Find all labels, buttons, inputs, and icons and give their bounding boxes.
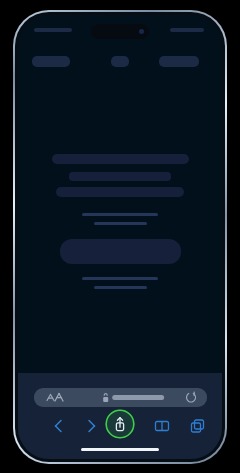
button[interactable]: Account (159, 56, 199, 67)
button[interactable]: Bookmarks (149, 413, 175, 439)
button[interactable]: Logo (111, 56, 129, 67)
button[interactable]: Menu (32, 56, 70, 67)
button[interactable]: Forward (79, 413, 105, 439)
button[interactable]: Back (45, 413, 71, 439)
button[interactable] (34, 388, 207, 407)
button[interactable]: Tabs (184, 413, 210, 439)
button[interactable]: Share (105, 409, 135, 439)
